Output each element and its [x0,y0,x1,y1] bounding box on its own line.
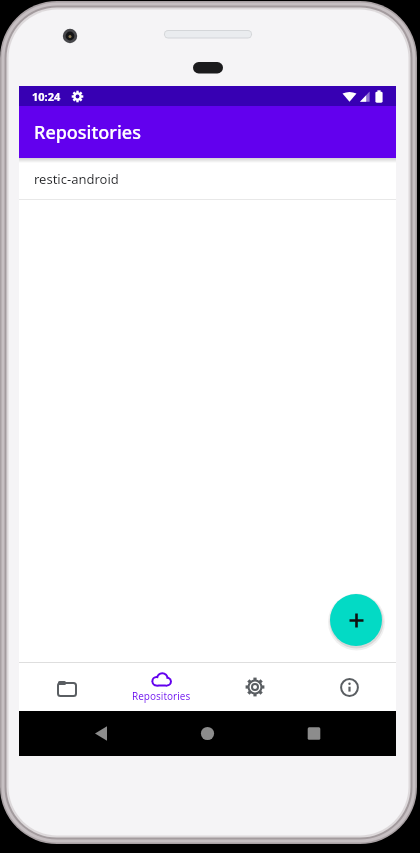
button[interactable] [330,594,382,646]
button[interactable] [302,663,396,711]
button[interactable]: restic-android [19,158,396,199]
button[interactable]: Repositories [114,663,208,711]
button[interactable] [19,663,114,711]
button[interactable] [208,663,302,711]
staticText: restic-android [34,170,119,188]
staticText: Repositories [34,120,141,145]
staticText: 10:24 [32,89,61,104]
staticText: Repositories [132,689,191,703]
